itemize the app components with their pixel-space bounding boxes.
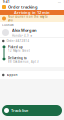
staticText: Track live — [11, 108, 28, 113]
staticText: COURIER — [2, 23, 14, 27]
staticText: 88 Oak Avenue, Apt 3 — [8, 60, 39, 63]
staticText: Picked up — [8, 45, 23, 49]
staticText: Honda • 4.9 ★ — [12, 34, 32, 37]
staticText: ... — [58, 0, 61, 4]
staticText: Alex Morgan — [12, 28, 37, 33]
staticText: Order tracking — [8, 4, 38, 10]
staticText: Delivering to — [8, 56, 27, 60]
staticText: Support — [6, 73, 17, 77]
staticText: 12 Maple Street — [8, 49, 30, 52]
staticText: Arriving in 12 min — [14, 10, 50, 15]
staticText: 9:41 — [3, 0, 10, 4]
staticText: Order #A72B14 — [6, 39, 29, 43]
staticText: Your courier is on the way to you — [8, 15, 48, 22]
